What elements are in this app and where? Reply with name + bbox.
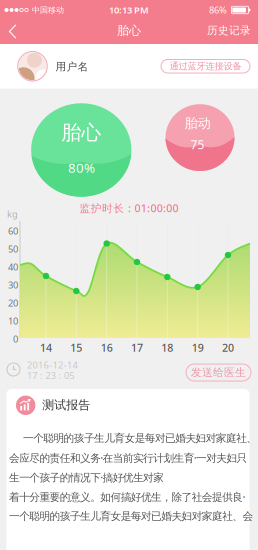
staticText: 胎心 [117, 23, 141, 38]
staticText: 监护时长 : 01:00:00 [79, 201, 179, 215]
staticText: 60 [8, 225, 18, 237]
staticText: 用户名 [55, 60, 88, 73]
staticText: 18 [161, 340, 173, 355]
staticText: 测试报告 [42, 397, 90, 412]
staticText: 0 [13, 333, 18, 345]
button[interactable]: 历史记录 [203, 18, 255, 42]
staticText: 着十分重要的意义。如何搞好优生，除了社会提供良· [9, 490, 245, 504]
staticText: 40 [8, 261, 18, 273]
staticText: kg [7, 208, 18, 220]
staticText: 胎动 [184, 115, 210, 131]
staticText: 会应尽的责任和义务·在当前实行计划生育·一对夫妇只 [9, 451, 248, 465]
staticText: 20 [8, 297, 18, 309]
staticText: 19 [192, 340, 204, 355]
staticText: 17 [131, 340, 143, 355]
staticText: 10 [8, 315, 18, 327]
staticText: 75 [190, 137, 204, 153]
button[interactable]: 通过蓝牙连接设备 [161, 57, 250, 75]
staticText: 15 [70, 340, 82, 355]
staticText: 历史记录 [207, 24, 251, 37]
staticText: 50 [8, 243, 18, 255]
staticText: 10:13 PM [109, 4, 149, 16]
staticText: 中国移动 [32, 5, 64, 15]
staticText: 一个聪明的孩子生儿育女是每对已婚夫妇对家庭社、 [23, 432, 257, 445]
staticText: 14 [40, 340, 52, 355]
staticText: 16 [101, 340, 113, 355]
staticText: 生一个孩子的情况下·搞好优生对家 [9, 470, 164, 484]
staticText: 30 [8, 279, 18, 291]
button[interactable]: 发送给医生 [186, 363, 251, 382]
button[interactable]: Back [0, 0, 28, 24]
staticText: 2016-12-14 [27, 359, 77, 371]
staticText: 17 : 23 : 05 [27, 369, 74, 382]
staticText: 一个聪明的孩子生儿育女是每对已婚夫妇对家庭社、会 [9, 510, 253, 523]
staticText: 发送给医生 [191, 366, 246, 379]
staticText: 80% [68, 159, 95, 176]
staticText: 通过蓝牙连接设备 [169, 60, 241, 72]
staticText: 20 [222, 340, 234, 355]
staticText: 86% [209, 4, 227, 16]
staticText: 胎心 [61, 120, 101, 145]
